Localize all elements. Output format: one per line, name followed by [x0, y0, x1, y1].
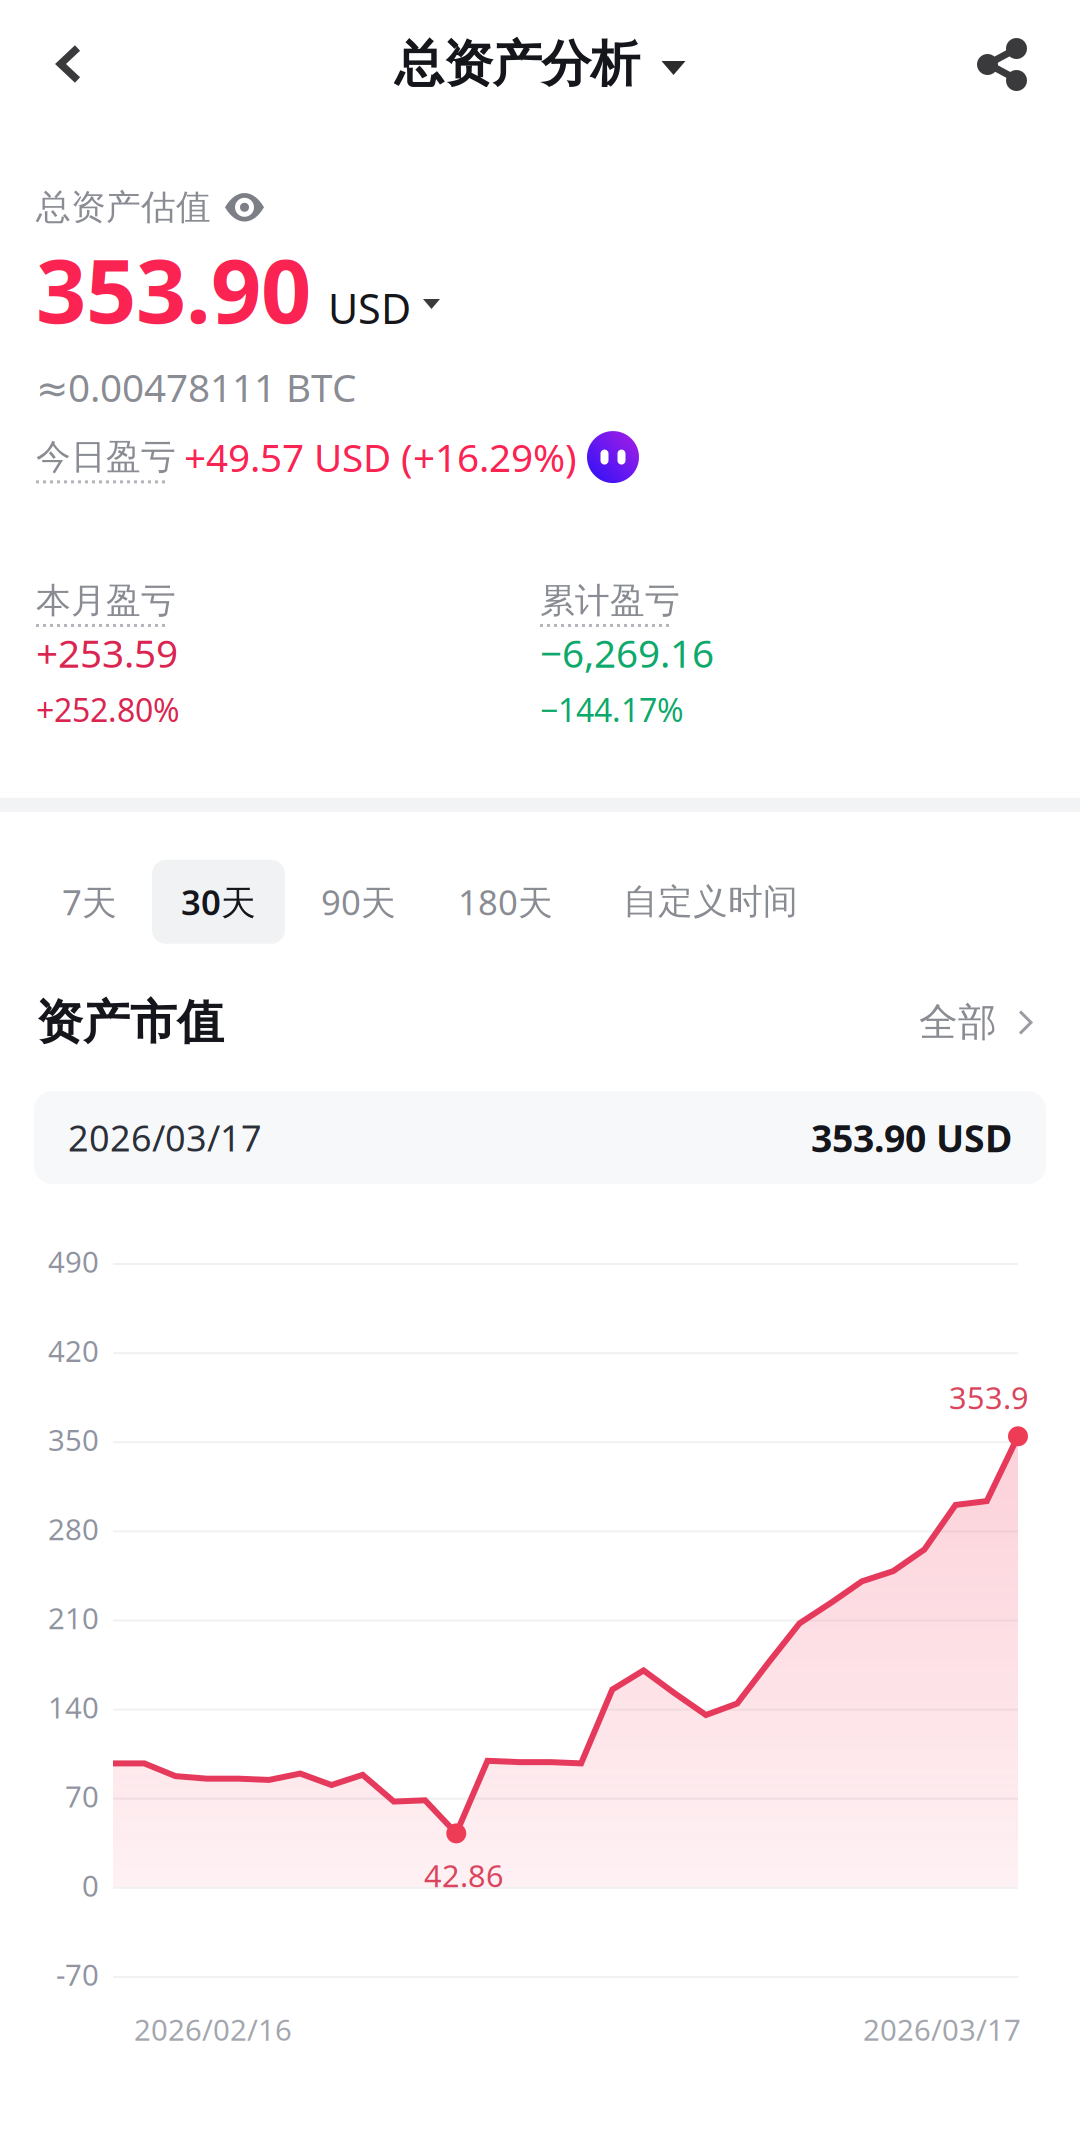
staticText: 42.86: [424, 1855, 504, 1896]
button[interactable]: 7天: [36, 860, 143, 944]
button[interactable]: 90天: [295, 860, 422, 944]
button[interactable]: Toggle balance visibility: [225, 193, 264, 221]
button[interactable]: USD: [311, 281, 440, 347]
staticText: 7天: [62, 879, 117, 925]
button[interactable]: Share: [924, 0, 1080, 128]
staticText: 累计盈亏: [540, 579, 680, 622]
staticText: 180天: [458, 879, 553, 925]
staticText: 2026/03/17: [863, 2010, 1021, 2049]
staticText: 2026/02/16: [134, 2010, 292, 2049]
staticText: ≈0.00478111 BTC: [36, 361, 356, 413]
staticText: USD: [328, 281, 411, 335]
staticText: +252.80%: [36, 688, 180, 731]
staticText: 2026/03/17: [68, 1114, 262, 1161]
staticText: 0: [82, 1866, 99, 1905]
staticText: 350: [48, 1420, 99, 1459]
staticText: +49.57 USD (+16.29%): [184, 431, 577, 483]
staticText: 30天: [181, 879, 256, 925]
staticText: 本月盈亏: [36, 579, 176, 622]
staticText: +253.59: [36, 627, 178, 678]
staticText: 353.90 USD: [811, 1113, 1012, 1162]
button[interactable]: 自定义时间: [597, 861, 824, 942]
button[interactable]: 全部: [919, 999, 1044, 1046]
button[interactable]: 30天: [152, 860, 285, 944]
staticText: 资产市值: [36, 994, 224, 1051]
staticText: 70: [65, 1777, 99, 1816]
staticText: 210: [48, 1598, 99, 1637]
staticText: 490: [48, 1242, 99, 1281]
staticText: 自定义时间: [623, 880, 798, 923]
staticText: 总资产估值: [36, 186, 211, 229]
staticText: −6,269.16: [540, 627, 714, 678]
staticText: 353.9: [949, 1377, 1029, 1418]
staticText: 今日盈亏: [36, 436, 176, 478]
staticText: 280: [48, 1509, 99, 1548]
staticText: 总资产分析: [394, 34, 639, 94]
staticText: −144.17%: [540, 688, 684, 731]
staticText: -70: [56, 1955, 99, 1994]
button[interactable]: Back: [0, 0, 138, 128]
staticText: 全部: [919, 999, 997, 1046]
staticText: 90天: [321, 879, 396, 925]
staticText: 353.90: [36, 231, 311, 347]
staticText: 420: [48, 1331, 99, 1370]
staticText: 140: [48, 1688, 99, 1727]
button[interactable]: 总资产分析: [380, 0, 699, 128]
button[interactable]: 180天: [432, 860, 579, 944]
